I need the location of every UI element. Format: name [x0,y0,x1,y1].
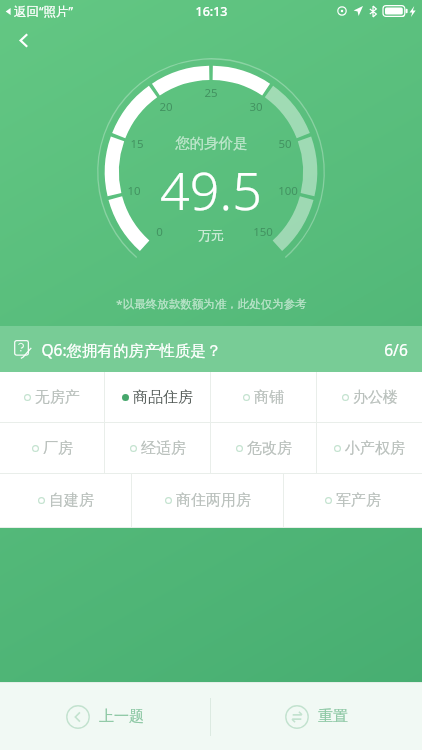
staticText: 15 [130,136,144,152]
staticText: 49.5 [160,154,262,225]
staticText: 上一题 [99,707,144,726]
staticText: 返回“照片” [14,3,73,20]
staticText: 10 [127,183,141,199]
staticText: 商铺 [254,388,284,407]
button[interactable]: 自建房 [0,474,131,527]
button[interactable]: 小产权房 [317,423,422,473]
button[interactable]: 厂房 [0,423,104,473]
staticText: 20 [159,99,173,115]
button[interactable]: 商铺 [211,372,316,422]
staticText: 您的身价是 [175,134,248,152]
button[interactable]: 经适房 [105,423,210,473]
staticText: 万元 [198,227,224,243]
staticText: 危改房 [247,439,292,458]
staticText: 150 [253,224,273,240]
staticText: 6/6 [384,339,408,360]
staticText: Q6:您拥有的房产性质是？ [41,339,222,360]
button[interactable]: Back [6,22,42,58]
button[interactable]: 重置 [211,683,422,750]
staticText: 自建房 [49,491,94,510]
button[interactable]: 商品住房 [105,372,210,422]
staticText: 25 [204,85,218,101]
staticText: 0 [156,224,163,240]
button[interactable]: 办公楼 [317,372,422,422]
staticText: 厂房 [43,439,73,458]
staticText: 商住两用房 [176,491,251,510]
staticText: 重置 [318,707,348,726]
staticText: 50 [278,136,292,152]
button[interactable]: 商住两用房 [132,474,283,527]
button[interactable]: 无房产 [0,372,104,422]
staticText: 小产权房 [345,439,405,458]
staticText: 16:13 [195,3,228,20]
staticText: 100 [278,183,298,199]
staticText: 30 [249,99,263,115]
button[interactable]: 危改房 [211,423,316,473]
button[interactable]: 上一题 [0,683,210,750]
staticText: 办公楼 [353,388,398,407]
staticText: *以最终放款数额为准，此处仅为参考 [116,296,307,312]
staticText: 商品住房 [133,388,193,407]
button[interactable]: 军产房 [284,474,422,527]
staticText: 经适房 [141,439,186,458]
staticText: 无房产 [35,388,80,407]
staticText: 军产房 [336,491,381,510]
